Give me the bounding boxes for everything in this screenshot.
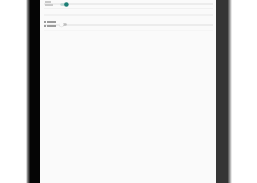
button[interactable]: Toggle off — [59, 21, 68, 28]
button[interactable]: Toggle on — [60, 1, 69, 8]
button[interactable]: Toggle on — [40, 0, 216, 9]
button[interactable]: Toggle off — [40, 19, 216, 29]
